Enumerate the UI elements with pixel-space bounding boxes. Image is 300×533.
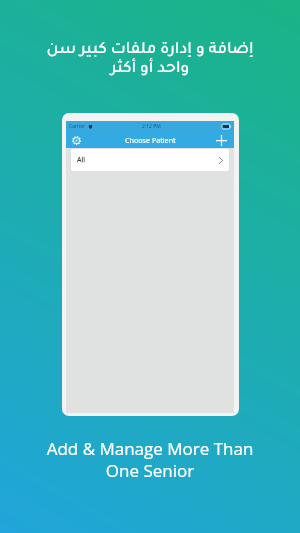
button[interactable]: Add patient (214, 133, 228, 147)
staticText: Ali (77, 155, 85, 165)
button[interactable]: Ali (71, 149, 229, 171)
staticText: إضافة و إدارة ملفات كبير سن واحد أو أكثر (0, 42, 300, 78)
staticText: Add & Manage More Than One Senior (0, 437, 300, 482)
staticText: Carrier (69, 123, 86, 130)
button[interactable]: Settings (69, 133, 83, 147)
staticText: Choose Patient (125, 135, 176, 145)
staticText: 2:12 PM (142, 123, 161, 130)
